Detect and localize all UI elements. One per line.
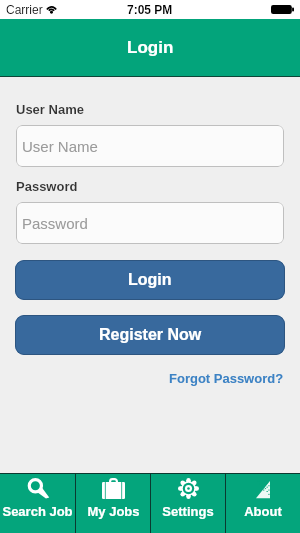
button[interactable]: Search Job xyxy=(0,473,75,533)
staticText: Password xyxy=(16,179,78,194)
staticText: Settings xyxy=(162,504,214,519)
button[interactable]: Settings xyxy=(151,473,225,533)
staticText: Carrier xyxy=(6,3,43,16)
staticText: Search Job xyxy=(2,504,73,519)
staticText: Forgot Password? xyxy=(169,371,284,386)
button[interactable]: My Jobs xyxy=(76,473,150,533)
staticText: User Name xyxy=(22,138,98,155)
button[interactable]: Forgot Password? xyxy=(169,371,284,386)
button[interactable]: About xyxy=(226,473,300,533)
staticText: Password xyxy=(22,215,88,232)
button[interactable]: Register Now xyxy=(15,315,285,355)
staticText: 7:05 PM xyxy=(127,3,173,16)
button[interactable]: Password xyxy=(16,202,284,244)
button[interactable]: User Name xyxy=(16,125,284,167)
staticText: Login xyxy=(127,38,174,57)
staticText: My Jobs xyxy=(87,504,140,519)
staticText: Login xyxy=(128,271,172,289)
staticText: Register Now xyxy=(99,326,202,344)
button[interactable]: Login xyxy=(15,260,285,300)
staticText: User Name xyxy=(16,102,84,117)
staticText: About xyxy=(244,504,282,519)
